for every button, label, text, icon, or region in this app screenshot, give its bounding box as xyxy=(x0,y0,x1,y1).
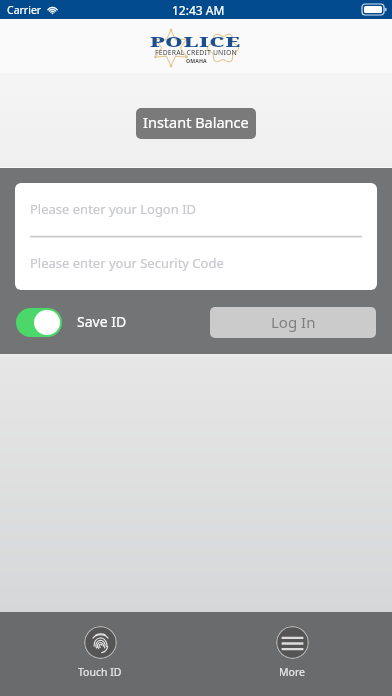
staticText: Save ID xyxy=(77,312,127,331)
staticText: Carrier xyxy=(7,3,42,17)
staticText: Please enter your Logon ID xyxy=(30,200,197,218)
staticText: FEDERAL CREDIT UNION xyxy=(155,48,237,57)
staticText: Log In xyxy=(271,312,316,332)
button[interactable]: Please enter your Logon ID xyxy=(15,183,377,236)
staticText: More xyxy=(279,665,305,679)
staticText: Touch ID xyxy=(78,665,122,679)
button[interactable]: Log In xyxy=(210,307,376,338)
staticText: 12:43 AM xyxy=(172,2,225,18)
button[interactable]: Touch ID xyxy=(75,626,125,679)
staticText: Instant Balance xyxy=(143,112,249,132)
button[interactable]: More xyxy=(267,626,317,679)
staticText: OMAHA xyxy=(186,57,207,64)
button[interactable]: Please enter your Security Code xyxy=(15,238,377,290)
staticText: Please enter your Security Code xyxy=(30,254,224,272)
button[interactable]: Instant Balance xyxy=(136,108,256,139)
staticText: POLICE xyxy=(150,31,242,51)
button[interactable]: Save ID xyxy=(16,308,62,337)
